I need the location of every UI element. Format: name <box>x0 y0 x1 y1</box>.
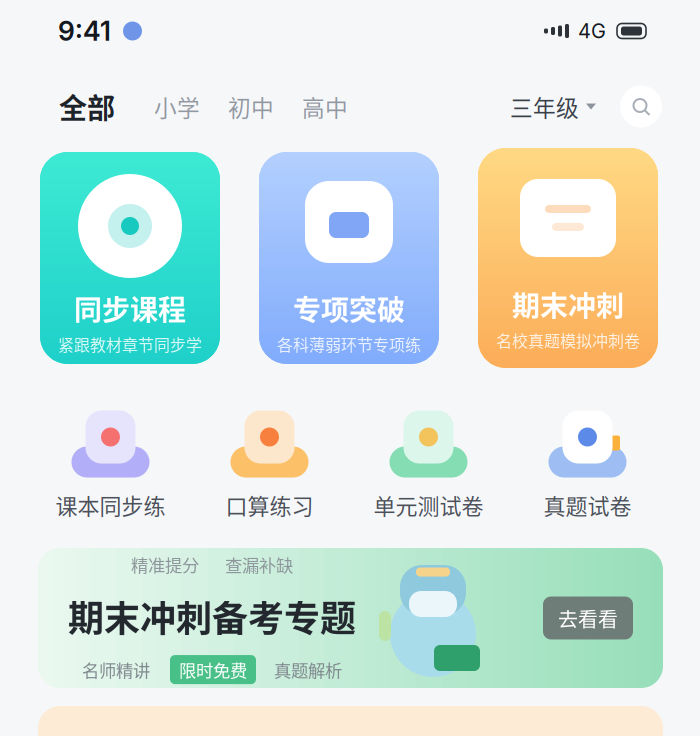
staticText: 口算练习 <box>225 489 313 521</box>
staticText: 名校真题模拟冲刺卷 <box>496 328 640 352</box>
staticText: 各科薄弱环节专项练 <box>277 332 421 356</box>
staticText: 三年级 <box>510 90 579 123</box>
button[interactable]: 单元测试卷 <box>349 404 508 521</box>
staticText: 同步课程 <box>74 288 186 328</box>
staticText: 课本同步练 <box>55 489 165 521</box>
button[interactable]: 全部 <box>59 86 115 127</box>
staticText: 专项突破 <box>293 288 405 328</box>
staticText: 期末冲刺备考专题 <box>68 590 356 642</box>
button[interactable]: 课本同步练 <box>31 404 190 521</box>
button[interactable]: 真题试卷 <box>508 404 667 521</box>
staticText: 紧跟教材章节同步学 <box>58 332 202 356</box>
staticText: 小学 <box>154 90 200 123</box>
staticText: 限时免费 <box>179 657 247 682</box>
staticText: 初中 <box>228 90 274 123</box>
staticText: 精准提分 <box>131 552 199 577</box>
button[interactable]: 高中 <box>302 90 348 123</box>
staticText: 9:41 <box>58 15 111 47</box>
button[interactable]: 搜索 <box>620 85 662 127</box>
staticText: 期末冲刺 <box>512 284 624 324</box>
staticText: 单元测试卷 <box>373 489 483 521</box>
button[interactable]: 初中 <box>228 90 274 123</box>
button[interactable]: 小学 <box>154 90 200 123</box>
staticText: 去看看 <box>558 603 618 632</box>
button[interactable]: 精准提分 <box>38 548 663 688</box>
button[interactable]: 同步课程 <box>40 152 220 364</box>
button[interactable]: 三年级 <box>510 90 596 123</box>
staticText: 全部 <box>59 86 115 127</box>
staticText: 真题试卷 <box>543 489 631 521</box>
staticText: 高中 <box>302 90 348 123</box>
staticText: 4G <box>578 19 606 43</box>
button[interactable]: 期末冲刺 <box>478 148 658 368</box>
staticText: 名师精讲 <box>82 657 150 682</box>
staticText: 查漏补缺 <box>225 552 293 577</box>
button[interactable]: 专项突破 <box>259 152 439 364</box>
button[interactable]: 口算练习 <box>190 404 349 521</box>
staticText: 真题解析 <box>274 657 342 682</box>
